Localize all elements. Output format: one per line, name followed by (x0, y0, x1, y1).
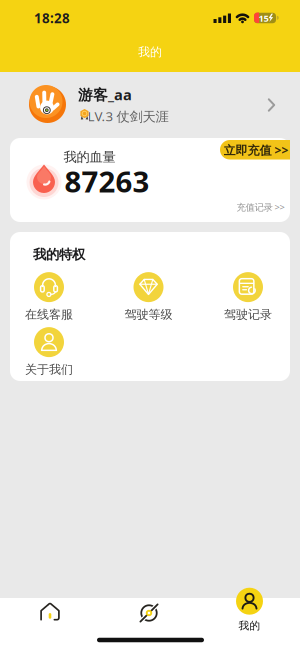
staticText: 关于我们 (25, 362, 73, 377)
button[interactable]: 发现 (119, 593, 179, 633)
staticText: 驾驶记录 (224, 307, 272, 322)
button[interactable]: 驾驶记录 (224, 272, 272, 322)
staticText: 游客_aa (78, 85, 132, 104)
staticText: 立即充值 >> (223, 142, 288, 158)
staticText: LV.3 仗剑天涯 (87, 107, 168, 125)
staticText: 87263 (64, 161, 149, 200)
button[interactable]: 充值记录 >> (236, 201, 284, 213)
button[interactable]: 我的 (236, 588, 263, 632)
button[interactable]: 在线客服 (25, 272, 73, 322)
button[interactable]: 立即充值 >> (220, 140, 290, 159)
staticText: 在线客服 (25, 307, 73, 322)
staticText: 驾驶等级 (124, 307, 172, 322)
button[interactable]: 游客_aa (0, 72, 300, 137)
staticText: 18:28 (34, 9, 70, 27)
staticText: 我的 (238, 619, 260, 632)
staticText: 我的特权 (33, 246, 85, 263)
staticText: 我的血量 (63, 149, 115, 165)
staticText: 15 (258, 12, 268, 24)
staticText: 我的 (138, 45, 162, 59)
button[interactable]: 关于我们 (25, 327, 73, 377)
button[interactable]: 驾驶等级 (124, 272, 172, 322)
button[interactable]: 首页 (20, 592, 80, 632)
staticText: 充值记录 >> (236, 201, 284, 213)
